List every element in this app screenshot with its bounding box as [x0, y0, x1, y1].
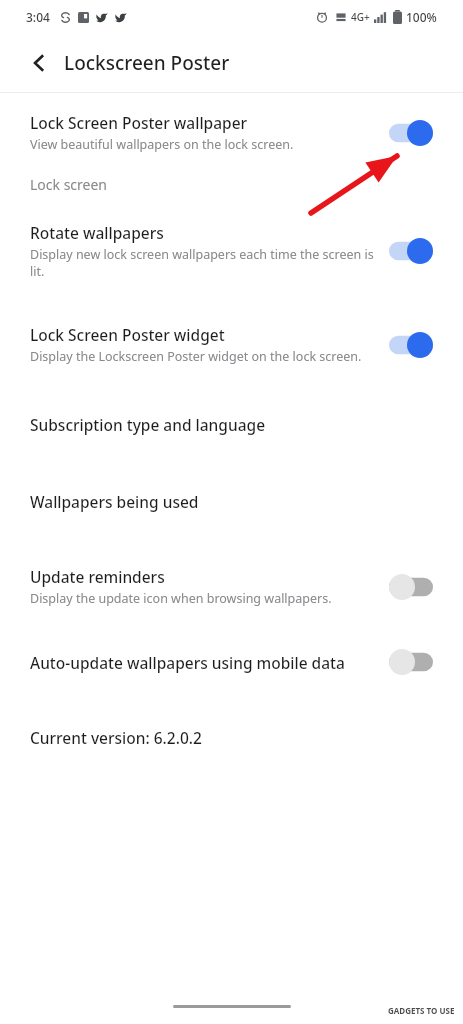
staticText: Lock Screen Poster widget	[30, 324, 225, 345]
staticText: Lock Screen Poster wallpaper	[30, 112, 248, 133]
staticText: Subscription type and language	[30, 414, 266, 435]
button[interactable]: Toggle on	[389, 238, 433, 264]
staticText: 4G+	[351, 10, 370, 24]
button[interactable]: Rotate wallpapers	[0, 220, 463, 282]
button[interactable]: Toggle off	[389, 649, 433, 675]
staticText: 100%	[406, 9, 437, 25]
button[interactable]: Back	[22, 46, 56, 80]
staticText: 3:04	[26, 9, 50, 25]
button[interactable]: Update reminders	[0, 564, 463, 609]
staticText: Lockscreen Poster	[64, 50, 230, 76]
staticText: Update reminders	[30, 566, 165, 587]
staticText: Lock screen	[30, 175, 108, 194]
staticText: GADGETS TO USE	[388, 1005, 455, 1016]
button[interactable]: Toggle on	[389, 120, 433, 146]
button[interactable]: Current version: 6.2.0.2	[0, 725, 463, 750]
button[interactable]: Lock screen	[0, 171, 463, 198]
staticText: Display new lock screen wallpapers each …	[30, 246, 381, 280]
button[interactable]: Wallpapers being used	[0, 489, 463, 514]
staticText: View beautiful wallpapers on the lock sc…	[30, 136, 294, 153]
staticText: Rotate wallpapers	[30, 222, 164, 243]
button[interactable]: Toggle off	[389, 574, 433, 600]
staticText: Wallpapers being used	[30, 491, 199, 512]
staticText: Auto-update wallpapers using mobile data	[30, 652, 345, 673]
staticText: Display the update icon when browsing wa…	[30, 590, 332, 607]
button[interactable]: Subscription type and language	[0, 412, 463, 437]
button[interactable]: Auto-update wallpapers using mobile data	[0, 647, 463, 677]
button[interactable]: Toggle on	[389, 332, 433, 358]
staticText: Current version: 6.2.0.2	[30, 727, 202, 748]
button[interactable]: Lock Screen Poster wallpaper	[0, 110, 463, 155]
staticText: Display the Lockscreen Poster widget on …	[30, 348, 362, 365]
button[interactable]: Lock Screen Poster widget	[0, 322, 463, 367]
